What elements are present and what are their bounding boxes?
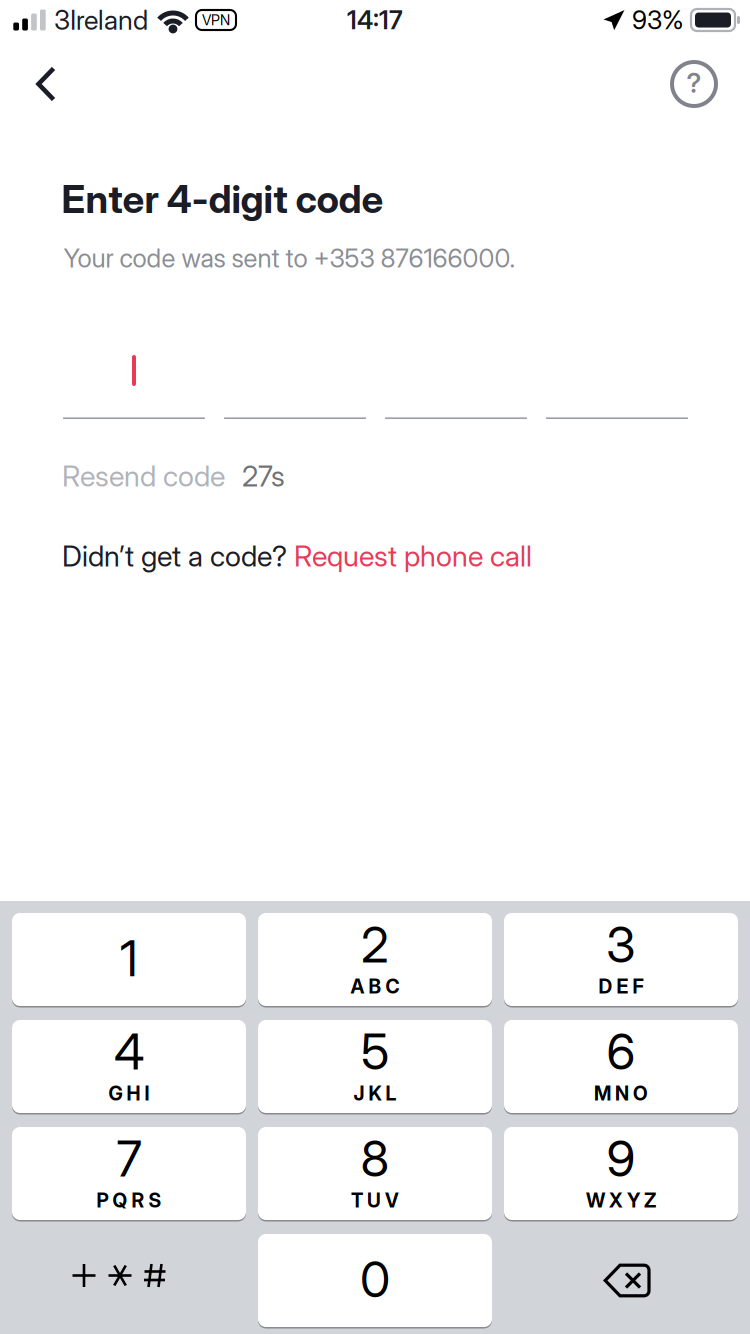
staticText: 93% [632, 4, 684, 35]
button[interactable]: Code digit [385, 353, 527, 419]
staticText: 0 [360, 1249, 390, 1309]
staticText: 1 [120, 928, 138, 988]
button[interactable]: Resend code [62, 458, 285, 493]
staticText: M N O [594, 1082, 648, 1105]
staticText: ? [686, 67, 701, 99]
staticText: 14:17 [347, 5, 403, 35]
staticText: 8 [360, 1129, 389, 1188]
staticText: Didn’t get a code? [62, 538, 287, 573]
button[interactable]: 1 [12, 913, 246, 1006]
button[interactable]: 7 [12, 1127, 246, 1220]
button[interactable]: Code digit [224, 353, 366, 419]
button[interactable]: 9 [504, 1127, 738, 1220]
staticText: D E F [598, 975, 643, 998]
staticText: 9 [606, 1129, 635, 1188]
staticText: 6 [606, 1022, 635, 1081]
staticText: 27s [242, 458, 285, 493]
staticText: 3Ireland [54, 4, 148, 36]
staticText: J K L [353, 1082, 396, 1105]
staticText: 4 [114, 1022, 144, 1081]
staticText: G H I [108, 1082, 149, 1105]
button[interactable]: 4 [12, 1020, 246, 1113]
staticText: T U V [351, 1189, 399, 1212]
staticText: 3 [606, 915, 636, 974]
staticText: 5 [361, 1022, 389, 1081]
staticText: Enter 4-digit code [61, 175, 383, 222]
staticText: 7 [116, 1129, 141, 1188]
staticText: Request phone call [294, 538, 532, 573]
button[interactable]: 5 [258, 1020, 492, 1113]
staticText: Resend code [62, 458, 225, 493]
button[interactable]: 8 [258, 1127, 492, 1220]
button[interactable]: Back [12, 48, 80, 120]
staticText: Your code was sent to +353 876166000. [63, 242, 515, 274]
button[interactable]: Request phone call [287, 538, 532, 573]
staticText: A B C [350, 975, 399, 998]
staticText: P Q R S [96, 1189, 161, 1212]
staticText: 2 [361, 915, 389, 974]
button[interactable]: Symbols [12, 1234, 246, 1327]
button[interactable]: 3 [504, 913, 738, 1006]
button[interactable]: Delete [504, 1234, 738, 1327]
staticText: VPN [202, 11, 230, 29]
button[interactable]: Help [660, 48, 728, 120]
button[interactable]: Code digit [63, 353, 205, 419]
staticText: W X Y Z [586, 1189, 656, 1212]
button[interactable]: 6 [504, 1020, 738, 1113]
button[interactable]: 0 [258, 1234, 492, 1327]
button[interactable]: 2 [258, 913, 492, 1006]
button[interactable]: Code digit [546, 353, 688, 419]
